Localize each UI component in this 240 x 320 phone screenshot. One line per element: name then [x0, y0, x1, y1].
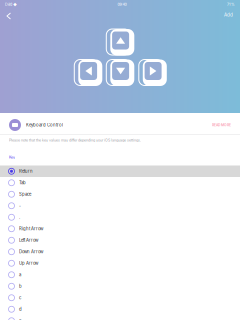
button[interactable]: a: [0, 269, 240, 280]
button[interactable]: Tab: [0, 177, 240, 188]
staticText: -: [19, 203, 21, 208]
staticText: Left Arrow: [19, 238, 38, 243]
staticText: d: [19, 307, 22, 312]
staticText: Return: [19, 169, 33, 174]
button[interactable]: Up Arrow: [0, 257, 240, 269]
staticText: Tab: [19, 180, 26, 185]
staticText: 71%: [227, 2, 235, 7]
staticText: b: [19, 284, 22, 289]
button[interactable]: READ MORE: [212, 123, 231, 127]
button[interactable]: c: [0, 292, 240, 303]
staticText: Up Arrow: [19, 261, 38, 266]
button[interactable]: Down arrow: [106, 59, 134, 86]
staticText: READ MORE: [212, 123, 231, 127]
button[interactable]: d: [0, 303, 240, 315]
button[interactable]: Left arrow: [74, 59, 102, 86]
staticText: Down Arrow: [19, 249, 43, 254]
staticText: .: [19, 215, 20, 220]
staticText: a: [19, 272, 21, 277]
button[interactable]: e: [0, 315, 240, 320]
staticText: Add: [224, 12, 233, 17]
staticText: Please note that the key values may diff…: [9, 138, 141, 142]
button[interactable]: Down Arrow: [0, 246, 240, 257]
button[interactable]: Back: [2, 8, 15, 24]
button[interactable]: Right Arrow: [0, 223, 240, 234]
button[interactable]: Up arrow: [106, 28, 134, 55]
button[interactable]: Right arrow: [139, 59, 167, 86]
button[interactable]: Space: [0, 188, 240, 200]
staticText: 09:40: [117, 2, 126, 7]
staticText: c: [19, 295, 21, 300]
button[interactable]: -: [0, 200, 240, 211]
button[interactable]: Left Arrow: [0, 234, 240, 246]
staticText: e: [19, 318, 21, 320]
staticText: Dad ◆: [5, 2, 17, 7]
staticText: Key: [9, 155, 15, 159]
staticText: Keyboard Control: [26, 122, 63, 128]
button[interactable]: Return: [0, 165, 240, 177]
button[interactable]: .: [0, 211, 240, 223]
staticText: Space: [19, 192, 31, 197]
staticText: Right Arrow: [19, 226, 43, 231]
button[interactable]: Add: [219, 7, 238, 22]
button[interactable]: b: [0, 280, 240, 292]
